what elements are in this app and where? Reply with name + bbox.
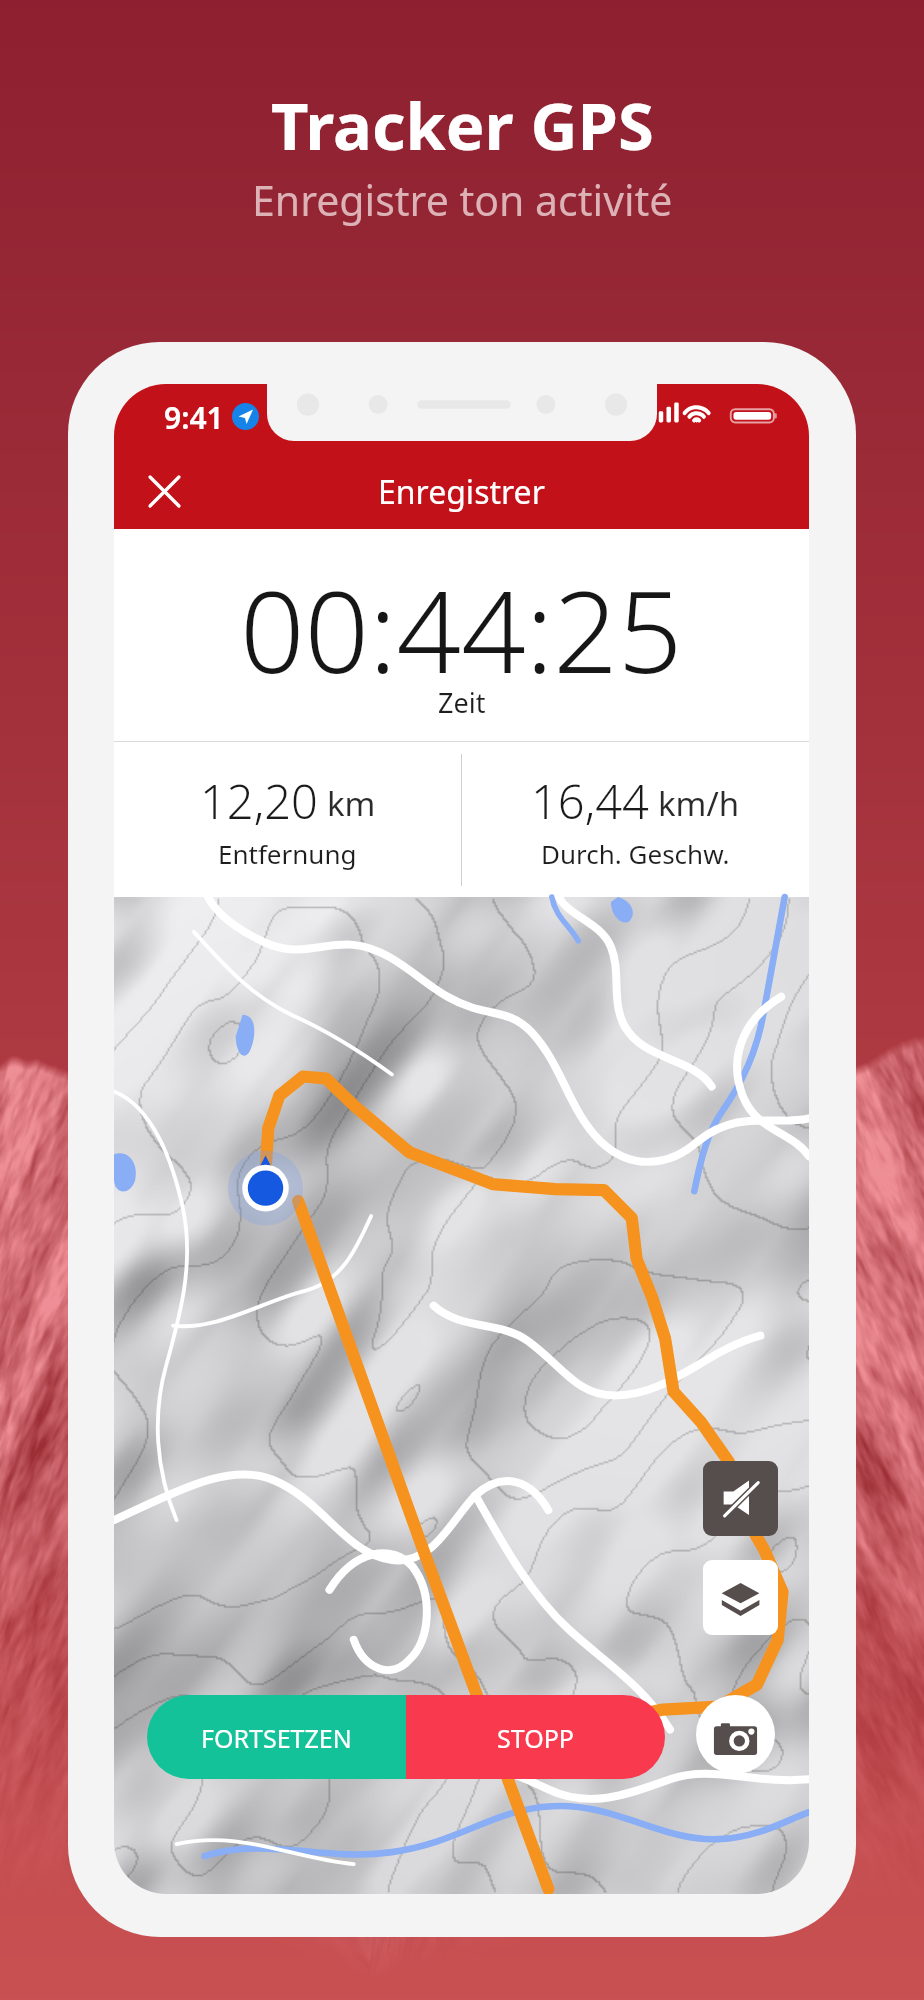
staticText: Zeit [438, 684, 486, 721]
staticText: Enregistrer [378, 470, 545, 514]
staticText: km [327, 781, 376, 826]
button[interactable]: Close [135, 462, 194, 521]
staticText: 16,44 [531, 769, 649, 833]
staticText: Durch. Geschw. [541, 836, 730, 871]
staticText: 12,20 [200, 769, 318, 833]
staticText: Tracker GPS [271, 81, 654, 170]
staticText: km/h [658, 781, 740, 826]
button[interactable]: Take photo [696, 1695, 775, 1774]
staticText: 00:44:25 [240, 552, 683, 706]
button[interactable]: FORTSETZEN [147, 1695, 406, 1779]
staticText: Enregistre ton activité [252, 172, 673, 228]
staticText: STOPP [497, 1721, 574, 1755]
button[interactable]: Map layers [703, 1560, 778, 1635]
staticText: 9:41 [164, 397, 224, 438]
staticText: Entfernung [218, 836, 357, 871]
staticText: FORTSETZEN [201, 1721, 352, 1755]
button[interactable]: STOPP [406, 1695, 665, 1779]
button[interactable]: Mute [703, 1461, 778, 1536]
